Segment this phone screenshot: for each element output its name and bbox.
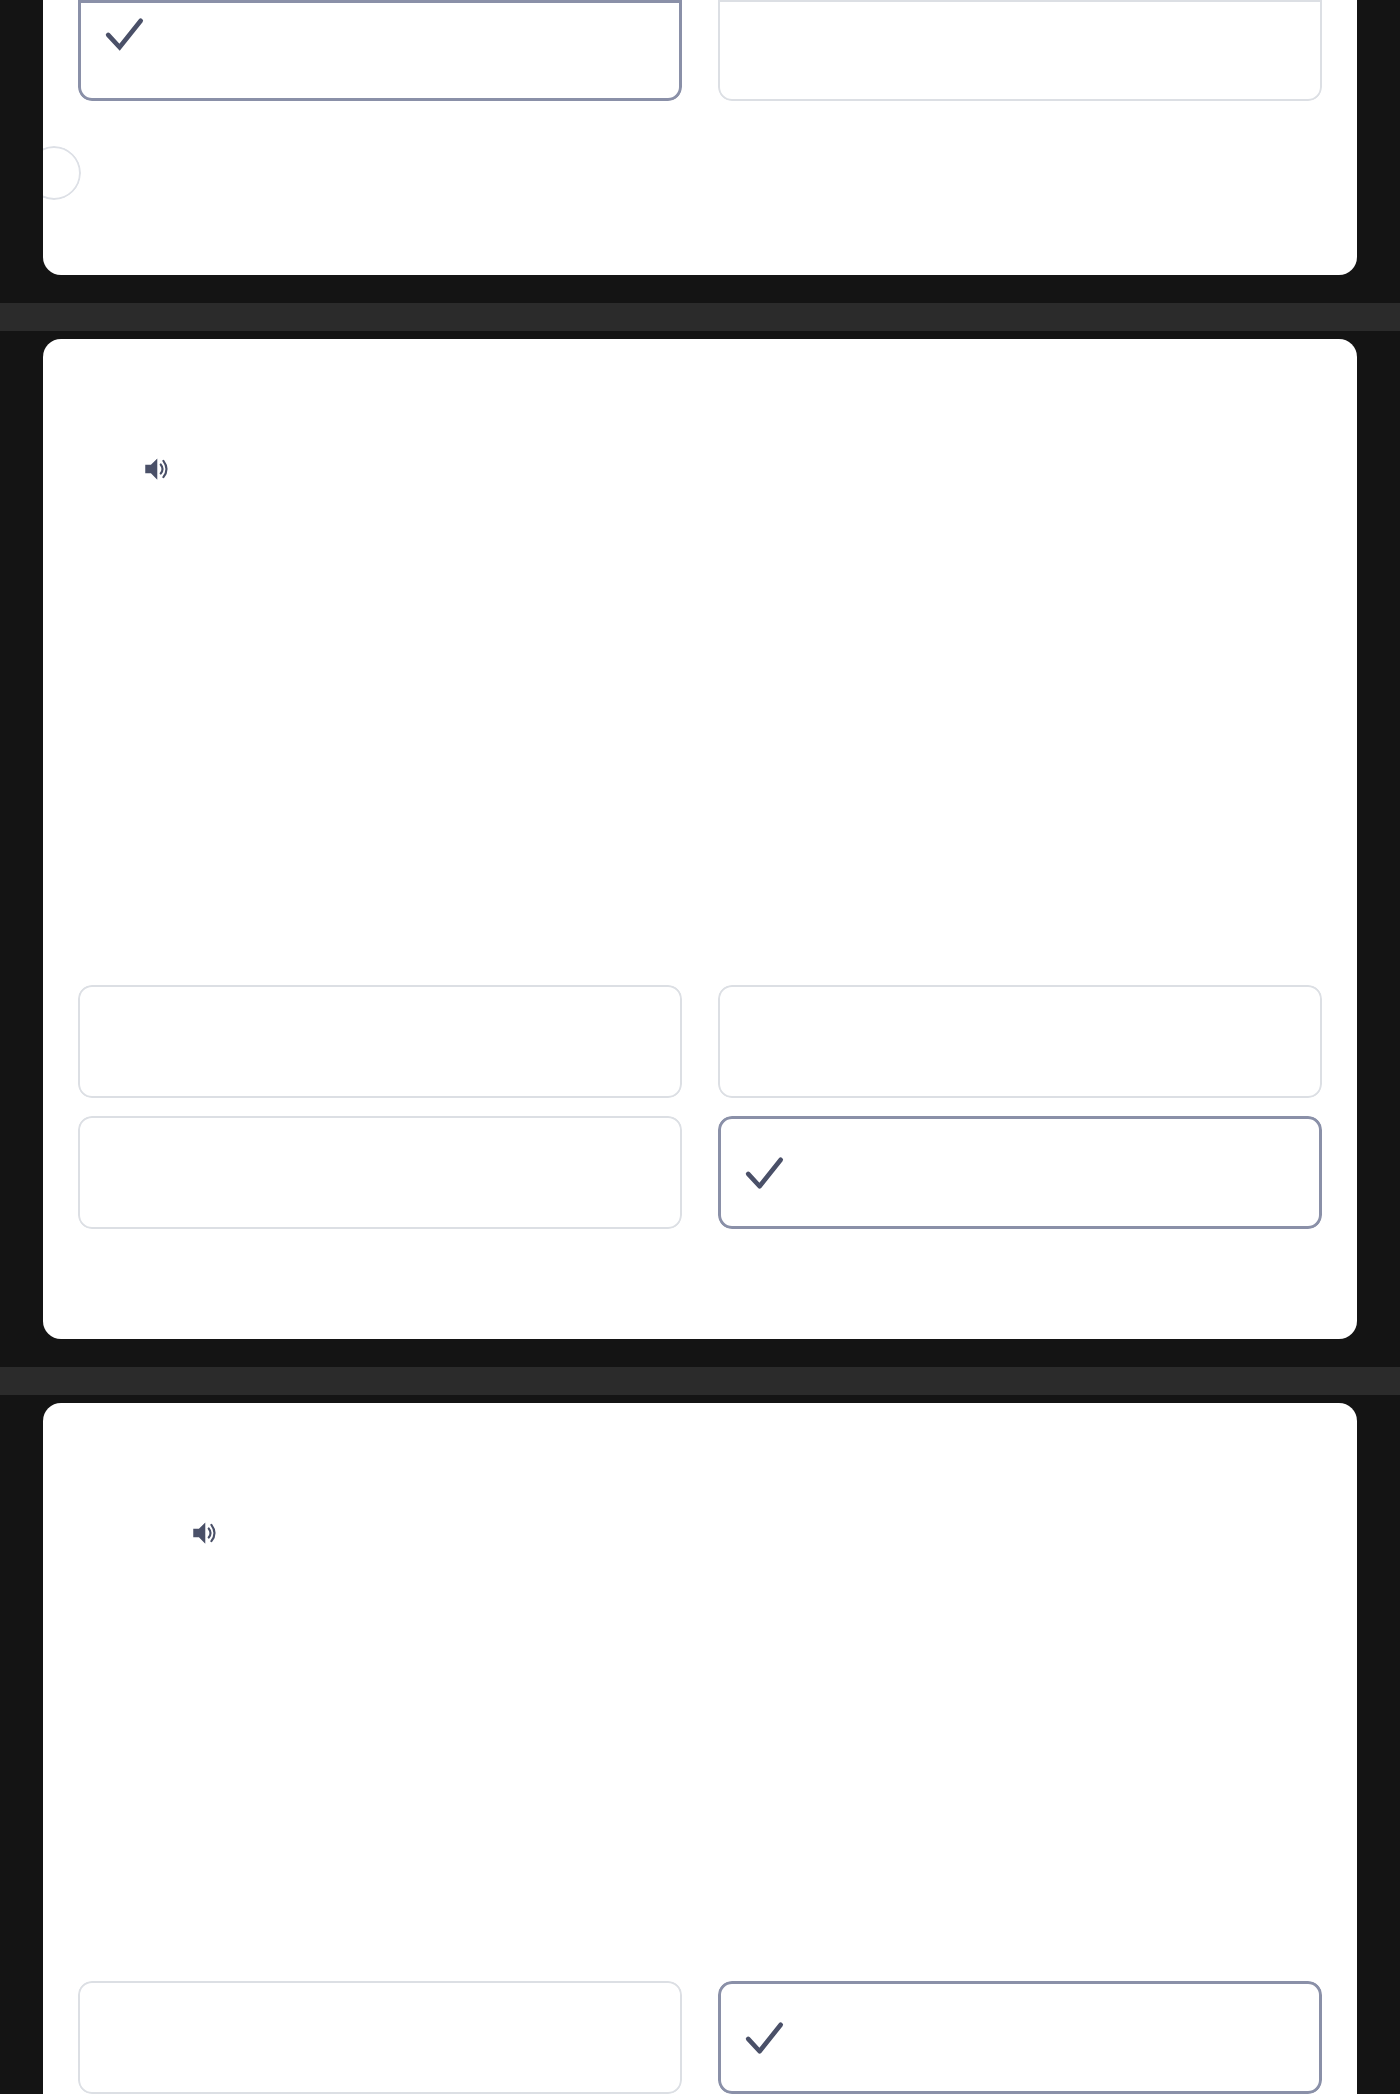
button[interactable] (78, 0, 682, 101)
button[interactable] (718, 1981, 1322, 2094)
button[interactable]: Play audio (183, 1510, 229, 1556)
button[interactable] (78, 985, 682, 1098)
button[interactable] (718, 985, 1322, 1098)
button[interactable]: Profile (43, 146, 81, 200)
button[interactable] (78, 1981, 682, 2094)
button[interactable] (718, 0, 1322, 101)
button[interactable]: Play audio (135, 446, 181, 492)
button[interactable] (718, 1116, 1322, 1229)
button[interactable] (78, 1116, 682, 1229)
